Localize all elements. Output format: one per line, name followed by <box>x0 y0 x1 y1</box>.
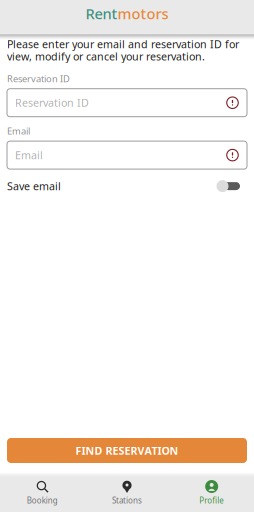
staticText: Email <box>15 148 43 162</box>
staticText: Rent <box>85 4 117 23</box>
button[interactable]: Profile <box>169 477 254 512</box>
button[interactable]: Save email <box>216 178 247 194</box>
staticText: Booking <box>27 495 58 506</box>
staticText: motors <box>117 4 168 23</box>
staticText: Email <box>7 125 30 137</box>
staticText: Profile <box>199 495 224 506</box>
staticText: Reservation ID <box>7 72 70 85</box>
staticText: Stations <box>112 495 142 506</box>
button[interactable]: Stations <box>85 477 169 512</box>
staticText: Reservation ID <box>15 96 89 110</box>
staticText: FIND RESERVATION <box>75 443 178 458</box>
button[interactable]: FIND RESERVATION <box>7 438 247 463</box>
staticText: Save email <box>7 179 61 193</box>
button[interactable]: Booking <box>0 477 85 512</box>
staticText: Please enter your email and reservation … <box>7 37 239 63</box>
